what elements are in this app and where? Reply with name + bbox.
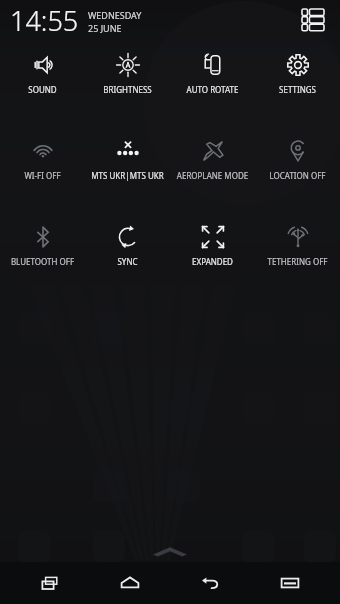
staticText: 25 JUNE (88, 22, 122, 34)
button[interactable]: TETHERING OFF (255, 218, 340, 280)
staticText: SOUND (0, 84, 85, 95)
button[interactable]: SYNC (85, 218, 170, 280)
staticText: TETHERING OFF (255, 256, 340, 267)
button[interactable]: SOUND (0, 46, 85, 108)
button[interactable]: Recents (20, 562, 80, 604)
staticText: EXPANDED (170, 256, 255, 267)
button[interactable]: WI-FI OFF (0, 132, 85, 194)
button[interactable]: EXPANDED (170, 218, 255, 280)
staticText: 14:55 (10, 2, 79, 39)
button[interactable]: AUTO ROTATE (170, 46, 255, 108)
staticText: SETTINGS (255, 84, 340, 95)
staticText: WI-FI OFF (0, 170, 85, 181)
button[interactable]: BLUETOOTH OFF (0, 218, 85, 280)
staticText: MTS UKR|MTS UKR (85, 170, 170, 181)
staticText: AUTO ROTATE (170, 84, 255, 95)
staticText: BLUETOOTH OFF (0, 256, 85, 267)
button[interactable]: Home (100, 562, 160, 604)
staticText: LOCATION OFF (255, 170, 340, 181)
button[interactable]: SETTINGS (255, 46, 340, 108)
button[interactable]: Menu (260, 562, 320, 604)
button[interactable]: AEROPLANE MODE (170, 132, 255, 194)
staticText: WEDNESDAY (88, 9, 142, 21)
button[interactable]: MTS UKR|MTS UKR (85, 132, 170, 194)
staticText: SYNC (85, 256, 170, 267)
button[interactable]: Quick settings (296, 3, 330, 37)
button[interactable]: Back (180, 562, 240, 604)
staticText: AEROPLANE MODE (170, 170, 255, 181)
staticText: BRIGHTNESS (85, 84, 170, 95)
button[interactable]: Collapse quick settings (0, 540, 340, 562)
button[interactable]: BRIGHTNESS (85, 46, 170, 108)
button[interactable]: LOCATION OFF (255, 132, 340, 194)
